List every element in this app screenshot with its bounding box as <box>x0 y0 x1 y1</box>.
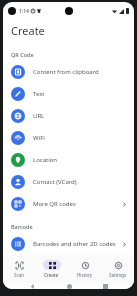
staticText: Content from clipboard <box>33 68 99 76</box>
staticText: WiFi <box>33 134 45 142</box>
button[interactable]: Recents <box>98 283 112 289</box>
staticText: QR Code <box>11 51 34 58</box>
staticText: Barcode <box>11 223 33 230</box>
other: More <box>122 202 127 207</box>
staticText: Create <box>11 23 45 38</box>
button[interactable]: History <box>68 255 101 283</box>
button[interactable]: WiFi <box>3 127 134 149</box>
button[interactable]: Settings <box>101 255 134 283</box>
staticText: 1:14 <box>19 8 29 15</box>
button[interactable]: URL <box>3 105 134 127</box>
staticText: Contact (VCard) <box>33 178 77 186</box>
staticText: Create <box>44 272 59 278</box>
button[interactable]: Text <box>3 83 134 105</box>
other: More <box>122 242 127 247</box>
button[interactable]: Home <box>62 283 76 289</box>
staticText: Settings <box>109 272 127 278</box>
button[interactable]: Back <box>25 283 39 289</box>
button[interactable]: Contact (VCard) <box>3 171 134 193</box>
button[interactable]: Content from clipboard <box>3 61 134 83</box>
button[interactable]: Scan <box>3 255 35 283</box>
staticText: Text <box>33 90 45 98</box>
staticText: Barcodes and other 2D codes <box>33 240 116 248</box>
staticText: Location <box>33 156 58 164</box>
button[interactable]: Location <box>3 149 134 171</box>
button[interactable]: More QR codes <box>3 193 134 215</box>
staticText: URL <box>33 112 45 120</box>
button[interactable]: Barcodes and other 2D codes <box>3 233 134 255</box>
staticText: History <box>77 272 93 278</box>
staticText: Scan <box>14 272 24 278</box>
staticText: More QR codes <box>33 200 76 208</box>
button[interactable]: Create <box>35 255 68 283</box>
